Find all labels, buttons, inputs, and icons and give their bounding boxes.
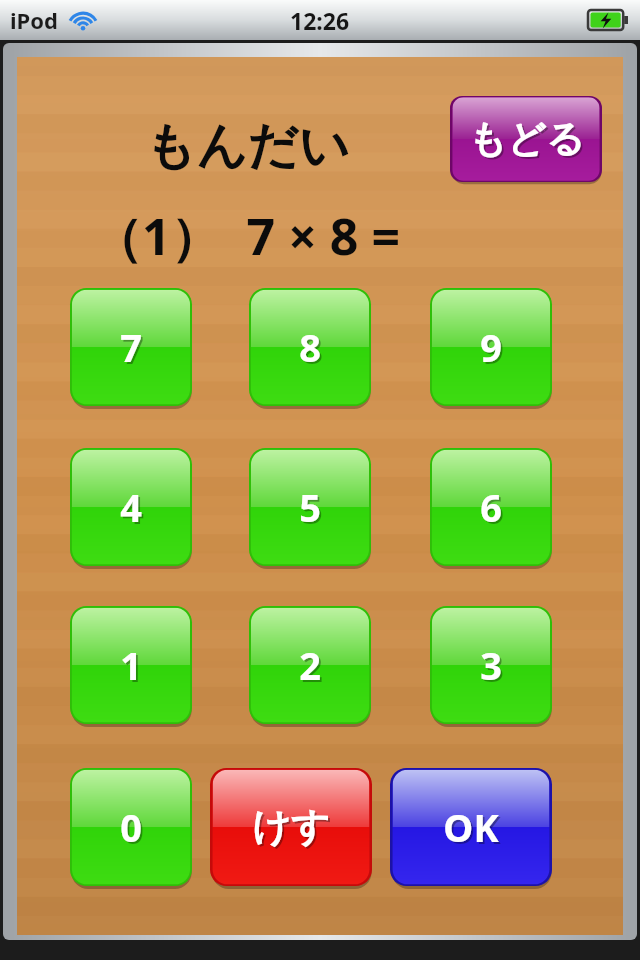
other: Battery charging <box>588 10 628 30</box>
button[interactable]: OK <box>390 768 552 886</box>
staticText: 12:26 <box>290 5 350 36</box>
staticText: 2 <box>299 639 321 691</box>
staticText: OK <box>445 803 501 855</box>
button[interactable]: 6 <box>430 448 552 566</box>
staticText: 6 <box>482 483 504 535</box>
button[interactable]: 1 <box>70 606 192 724</box>
staticText: 5 <box>299 481 321 533</box>
staticText: 1 <box>122 641 144 693</box>
staticText: 5 <box>301 483 323 535</box>
button[interactable]: 3 <box>430 606 552 724</box>
staticText: 9 <box>482 323 504 375</box>
staticText: （1） 7 × 8 = <box>92 202 400 270</box>
staticText: 7 <box>122 323 144 375</box>
button[interactable]: 4 <box>70 448 192 566</box>
other: Wi-Fi signal <box>68 9 98 33</box>
button[interactable]: けす <box>210 768 372 886</box>
staticText: 7 <box>120 321 142 373</box>
staticText: iPod <box>10 5 58 35</box>
staticText: もどる <box>470 117 587 165</box>
button[interactable]: 7 <box>70 288 192 406</box>
staticText: もんだい <box>145 115 350 178</box>
staticText: 6 <box>480 481 502 533</box>
staticText: 0 <box>122 803 144 855</box>
staticText: 3 <box>480 639 502 691</box>
staticText: 3 <box>482 641 504 693</box>
button[interactable]: 9 <box>430 288 552 406</box>
button[interactable]: 2 <box>249 606 371 724</box>
staticText: けす <box>252 803 330 851</box>
staticText: 0 <box>120 801 142 853</box>
button[interactable]: もどる <box>450 96 602 182</box>
staticText: OK <box>443 801 499 853</box>
staticText: 4 <box>120 481 142 533</box>
staticText: 9 <box>480 321 502 373</box>
staticText: 8 <box>301 323 323 375</box>
button[interactable]: 8 <box>249 288 371 406</box>
staticText: 4 <box>122 483 144 535</box>
staticText: 1 <box>120 639 142 691</box>
staticText: けす <box>254 805 332 853</box>
button[interactable]: 0 <box>70 768 192 886</box>
button[interactable]: 5 <box>249 448 371 566</box>
staticText: 8 <box>299 321 321 373</box>
staticText: もどる <box>468 115 585 163</box>
staticText: 2 <box>301 641 323 693</box>
